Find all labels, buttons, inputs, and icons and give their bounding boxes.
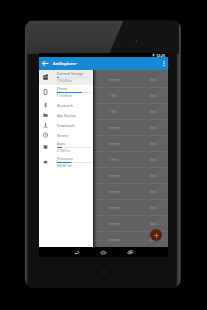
staticText: Recent [57, 133, 68, 138]
staticText: empty [109, 205, 120, 210]
button[interactable]: Phone [39, 85, 93, 100]
button[interactable]: 1 file [39, 104, 168, 119]
staticText: Jan 3 [150, 173, 159, 178]
staticText: Jan 3 [150, 221, 159, 226]
staticText: 12:25 [156, 53, 166, 57]
staticText: empty [109, 141, 120, 146]
button[interactable]: Navigate up [39, 57, 51, 70]
staticText: 868 MB free [57, 164, 72, 168]
staticText: Jan 3 [150, 125, 159, 130]
staticText: App Backup [57, 113, 76, 118]
button[interactable]: More options [159, 57, 168, 70]
staticText: Jan 3 [150, 141, 159, 146]
button[interactable]: 2 files [39, 152, 168, 167]
staticText: AntExplorer [53, 61, 77, 67]
button[interactable]: empty [39, 72, 168, 87]
staticText: Jan 3 [150, 93, 159, 98]
button[interactable]: empty [39, 200, 168, 215]
staticText: Jan 3 [150, 237, 159, 242]
staticText: 1 file [109, 93, 118, 98]
button[interactable]: empty [39, 184, 168, 199]
staticText: 4.1 GB free [57, 149, 71, 153]
button[interactable]: empty [39, 216, 168, 231]
button[interactable]: empty [39, 168, 168, 183]
button[interactable]: empty [39, 136, 168, 151]
staticText: Apps [57, 141, 65, 146]
button[interactable]: Home [96, 247, 110, 257]
button[interactable]: External Storage [39, 70, 93, 85]
staticText: empty [109, 125, 120, 130]
staticText: Jan 3 [150, 205, 159, 210]
staticText: 1.56 GB free [57, 94, 72, 98]
staticText: Phone [57, 86, 68, 91]
staticText: Bluetooth [57, 103, 73, 108]
staticText: Jan 3 [150, 189, 159, 194]
button[interactable]: App Backup [39, 110, 93, 120]
staticText: Jan 3 [150, 109, 159, 114]
button[interactable]: 1 file [39, 88, 168, 103]
staticText: empty [109, 237, 120, 242]
staticText: empty [109, 189, 120, 194]
button[interactable]: Downloads [39, 120, 93, 130]
button[interactable]: Recent [39, 130, 93, 140]
button[interactable]: Bluetooth [39, 100, 93, 110]
staticText: 1 file [109, 109, 118, 114]
staticText: Processes [57, 156, 73, 161]
button[interactable]: Apps [39, 140, 93, 155]
staticText: 2 files [109, 157, 119, 162]
staticText: empty [109, 221, 120, 226]
button[interactable]: empty [39, 232, 168, 247]
staticText: External Storage [57, 71, 84, 76]
button[interactable]: Add [150, 229, 162, 241]
button[interactable]: empty [39, 120, 168, 135]
button[interactable]: Processes [39, 155, 93, 170]
staticText: Jan 3 [150, 77, 159, 82]
staticText: 7.98 GB free [57, 79, 72, 83]
button[interactable]: Back [70, 247, 84, 257]
staticText: empty [109, 77, 120, 82]
staticText: empty [109, 173, 120, 178]
staticText: Downloads [57, 123, 75, 128]
staticText: Jan 3 [150, 157, 159, 162]
button[interactable]: Recent apps [123, 247, 137, 257]
